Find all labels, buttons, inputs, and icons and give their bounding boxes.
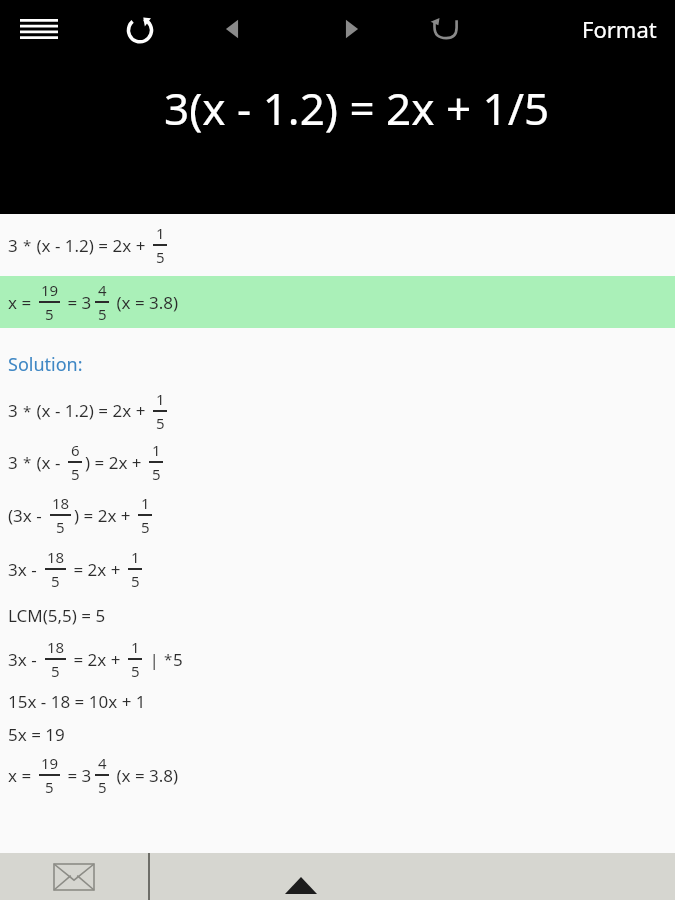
- button[interactable]: Undo: [422, 7, 466, 51]
- button[interactable]: Menu: [16, 6, 62, 52]
- staticText: (x = 3.8): [112, 291, 179, 314]
- staticText: 5: [45, 304, 54, 324]
- staticText: 3: [8, 451, 23, 474]
- staticText: x =: [8, 764, 36, 787]
- staticText: Format: [582, 14, 657, 44]
- staticText: *: [23, 401, 32, 421]
- staticText: 1: [156, 223, 165, 243]
- staticText: 4: [98, 753, 107, 773]
- staticText: 5: [152, 464, 161, 484]
- staticText: 5: [56, 517, 65, 537]
- staticText: 18: [52, 493, 70, 513]
- staticText: = 2x +: [69, 648, 125, 671]
- staticText: LCM(5,5) = 5: [8, 604, 106, 627]
- button[interactable]: 3: [0, 214, 675, 276]
- staticText: 19: [41, 753, 59, 773]
- staticText: *: [164, 649, 173, 669]
- staticText: (x - 1.2) = 2x +: [32, 399, 150, 422]
- button[interactable]: Previous: [210, 7, 254, 51]
- staticText: 5: [131, 661, 140, 681]
- staticText: 1: [152, 440, 161, 460]
- staticText: 3(x - 1.2) = 2x + 1/5: [164, 78, 550, 138]
- staticText: (3x -: [8, 504, 47, 527]
- staticText: (x -: [32, 451, 65, 474]
- staticText: *: [23, 452, 32, 472]
- staticText: 1: [131, 547, 140, 567]
- staticText: 4: [98, 280, 107, 300]
- staticText: 5: [51, 661, 60, 681]
- staticText: 3x -: [8, 648, 42, 671]
- staticText: Solution:: [8, 352, 83, 377]
- staticText: 3x -: [8, 558, 42, 581]
- staticText: (x = 3.8): [112, 764, 179, 787]
- staticText: 5: [156, 247, 165, 267]
- staticText: 18: [47, 637, 65, 657]
- staticText: x =: [8, 291, 36, 314]
- staticText: *: [23, 235, 32, 255]
- staticText: 5x = 19: [8, 723, 65, 746]
- staticText: = 3: [63, 291, 92, 314]
- staticText: 3: [8, 234, 23, 257]
- staticText: 5: [156, 413, 165, 433]
- staticText: 1: [156, 389, 165, 409]
- staticText: 5: [173, 648, 183, 671]
- staticText: 1: [141, 493, 150, 513]
- staticText: 3: [8, 399, 23, 422]
- staticText: = 2x +: [69, 558, 125, 581]
- staticText: (x - 1.2) = 2x +: [32, 234, 150, 257]
- staticText: 5: [98, 304, 107, 324]
- staticText: 6: [71, 440, 80, 460]
- staticText: 5: [98, 777, 107, 797]
- button[interactable]: Refresh: [118, 7, 162, 51]
- staticText: 5: [71, 464, 80, 484]
- staticText: 5: [45, 777, 54, 797]
- staticText: 5: [131, 571, 140, 591]
- staticText: 5: [141, 517, 150, 537]
- staticText: = 3: [63, 764, 92, 787]
- staticText: 15x - 18 = 10x + 1: [8, 690, 146, 713]
- staticText: ) = 2x +: [85, 451, 146, 474]
- button[interactable]: x =: [0, 276, 675, 328]
- staticText: 18: [47, 547, 65, 567]
- staticText: ) = 2x +: [74, 504, 135, 527]
- button[interactable]: Expand: [150, 853, 675, 900]
- button[interactable]: Format: [578, 8, 661, 50]
- staticText: |: [145, 648, 164, 671]
- button[interactable]: Mail: [0, 853, 148, 900]
- staticText: 19: [41, 280, 59, 300]
- staticText: 5: [51, 571, 60, 591]
- staticText: 1: [131, 637, 140, 657]
- button[interactable]: Next: [330, 7, 374, 51]
